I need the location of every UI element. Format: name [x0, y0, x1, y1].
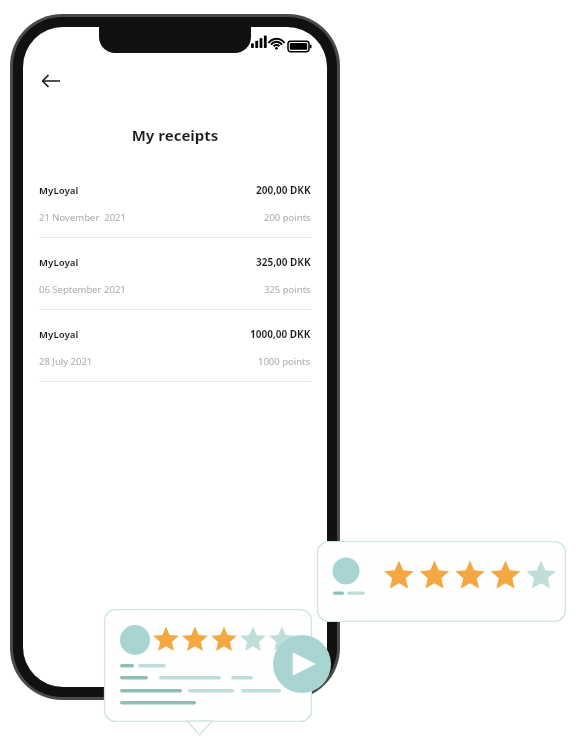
button[interactable]: Review three stars [104, 609, 312, 736]
staticText: 1000,00 DKK [250, 327, 311, 341]
staticText: My receipts [23, 125, 327, 145]
button[interactable]: MyLoyal [23, 255, 327, 327]
staticText: 325,00 DKK [256, 255, 311, 269]
button[interactable]: Send [273, 635, 331, 693]
staticText: MyLoyal [39, 184, 256, 197]
staticText: 21 November 2021 [39, 211, 264, 224]
staticText: 28 July 2021 [39, 355, 258, 368]
staticText: 06 September 2021 [39, 283, 264, 296]
button[interactable]: Back [33, 63, 69, 99]
staticText: MyLoyal [39, 256, 256, 269]
button[interactable]: MyLoyal [23, 327, 327, 399]
staticText: 325 points [264, 283, 311, 296]
button[interactable]: Review five stars [317, 541, 566, 622]
button[interactable]: MyLoyal [23, 183, 327, 255]
staticText: 1000 points [258, 355, 311, 368]
staticText: 200,00 DKK [256, 183, 311, 197]
staticText: MyLoyal [39, 328, 250, 341]
staticText: 200 points [264, 211, 311, 224]
